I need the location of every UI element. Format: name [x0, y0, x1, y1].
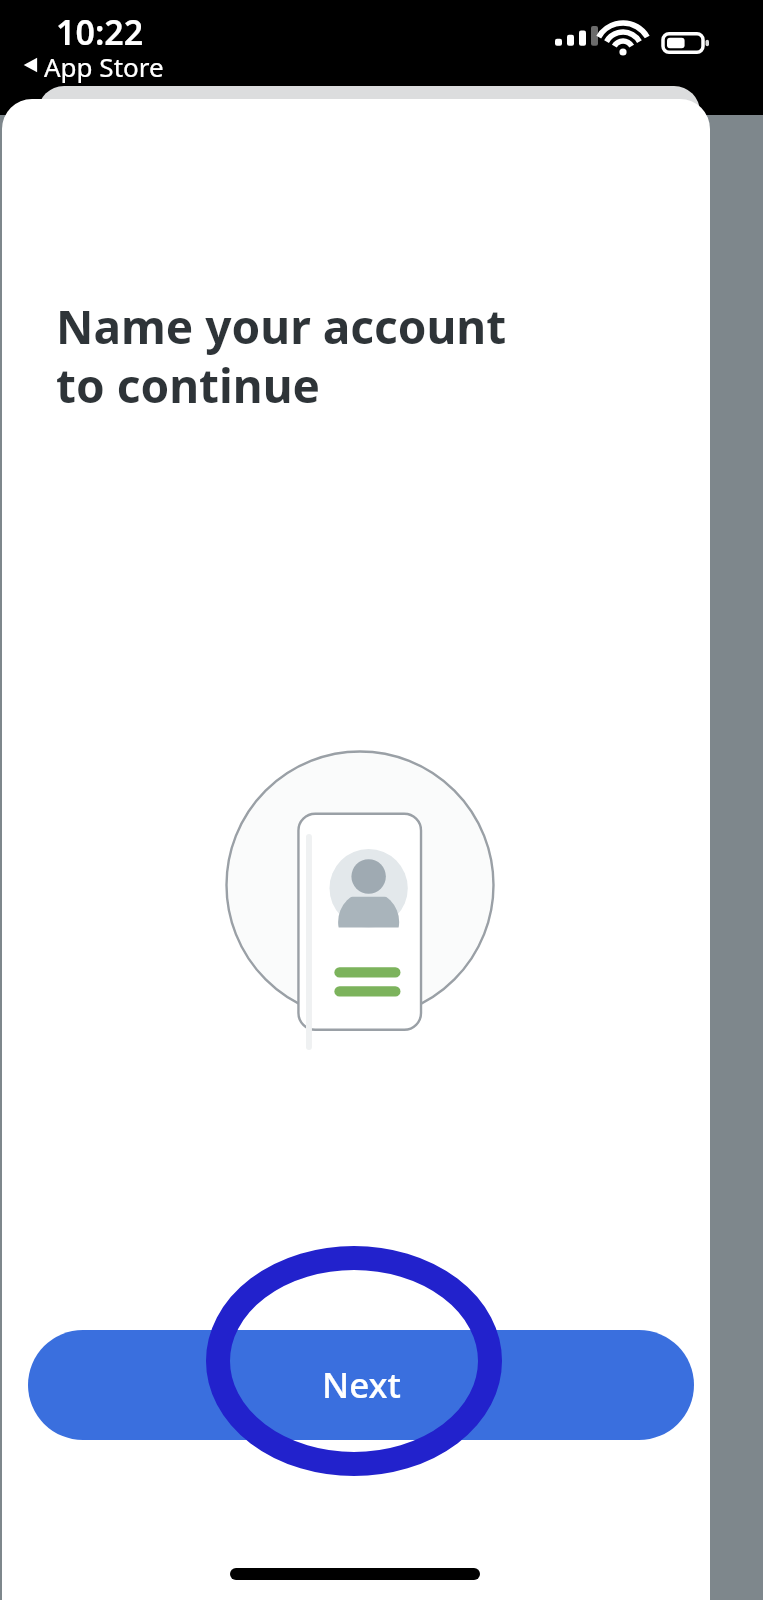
staticText: Name your account to continue: [56, 295, 507, 416]
staticText: App Store: [44, 49, 164, 84]
button[interactable]: Back to App Store: [16, 50, 136, 85]
button[interactable]: Next: [28, 1330, 694, 1440]
staticText: 10:22: [56, 9, 144, 55]
staticText: Next: [322, 1361, 401, 1409]
